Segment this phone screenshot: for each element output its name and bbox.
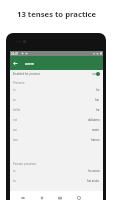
staticText: 13 tenses to practice [17,9,97,19]
button[interactable]: io [10,85,103,95]
button[interactable]: Favorites [36,192,47,200]
staticText: abbiamo [88,118,100,122]
staticText: avere [25,61,34,66]
staticText: Presente [13,81,25,85]
button[interactable]: noi [10,115,103,125]
button[interactable]: loro [10,135,103,145]
button[interactable]: tu [10,176,103,186]
staticText: hanno [91,138,100,142]
staticText: hai avuto [87,179,100,183]
staticText: hai [95,98,100,102]
button[interactable]: tu [10,95,103,105]
staticText: lui/lei [13,108,21,112]
staticText: tu [13,98,16,102]
button[interactable]: lui/lei [10,105,103,115]
button[interactable]: Enabled for practice [10,70,103,78]
button[interactable]: Back [10,58,21,69]
button[interactable]: voi [10,125,103,135]
button[interactable]: io [10,166,103,176]
staticText: Passato prossimo [13,162,37,166]
staticText: ho avuto [88,169,100,173]
staticText: Enabled for practice [13,72,41,76]
staticText: ha [96,108,100,112]
button[interactable]: Verbs [54,192,65,200]
staticText: avete [92,128,100,132]
staticText: io [13,88,16,92]
staticText: loro [13,138,19,142]
staticText: 10:41 [11,52,19,56]
button[interactable]: Home [17,192,28,200]
staticText: tu [13,179,16,183]
staticText: voi [13,128,17,132]
staticText: io [13,169,16,173]
staticText: ho [96,88,100,92]
button[interactable]: Settings [73,192,84,200]
staticText: noi [13,118,18,122]
